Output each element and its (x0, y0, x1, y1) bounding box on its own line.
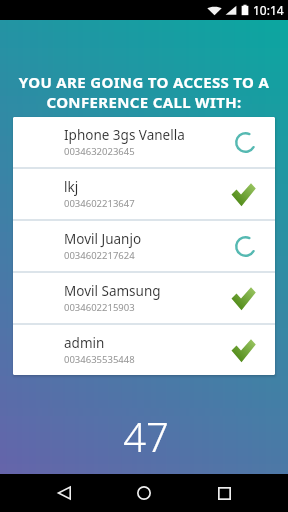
staticText: 0034602215903 (64, 301, 135, 314)
staticText: Movil Samsung (64, 282, 161, 300)
staticText: Iphone 3gs Vanella (64, 126, 185, 144)
staticText: 0034602213647 (64, 197, 135, 210)
button[interactable]: Back (44, 474, 84, 512)
staticText: admin (64, 334, 105, 352)
button[interactable]: Recents (204, 474, 244, 512)
staticText: YOU ARE GOING TO ACCESS TO A CONFERENCE … (10, 72, 278, 112)
staticText: 0034635535448 (64, 353, 135, 366)
button[interactable]: Movil Juanjo (13, 221, 275, 271)
button[interactable]: Movil Samsung (13, 273, 275, 323)
staticText: 0034602217624 (64, 249, 135, 262)
staticText: lkj (64, 178, 79, 196)
button[interactable]: Home (124, 474, 164, 512)
staticText: 10:14 (253, 2, 284, 18)
button[interactable]: admin (13, 325, 275, 375)
staticText: 0034632023645 (64, 145, 135, 158)
staticText: Movil Juanjo (64, 230, 142, 248)
staticText: 47 (2, 409, 288, 463)
button[interactable]: Iphone 3gs Vanella (13, 117, 275, 167)
button[interactable]: lkj (13, 169, 275, 219)
